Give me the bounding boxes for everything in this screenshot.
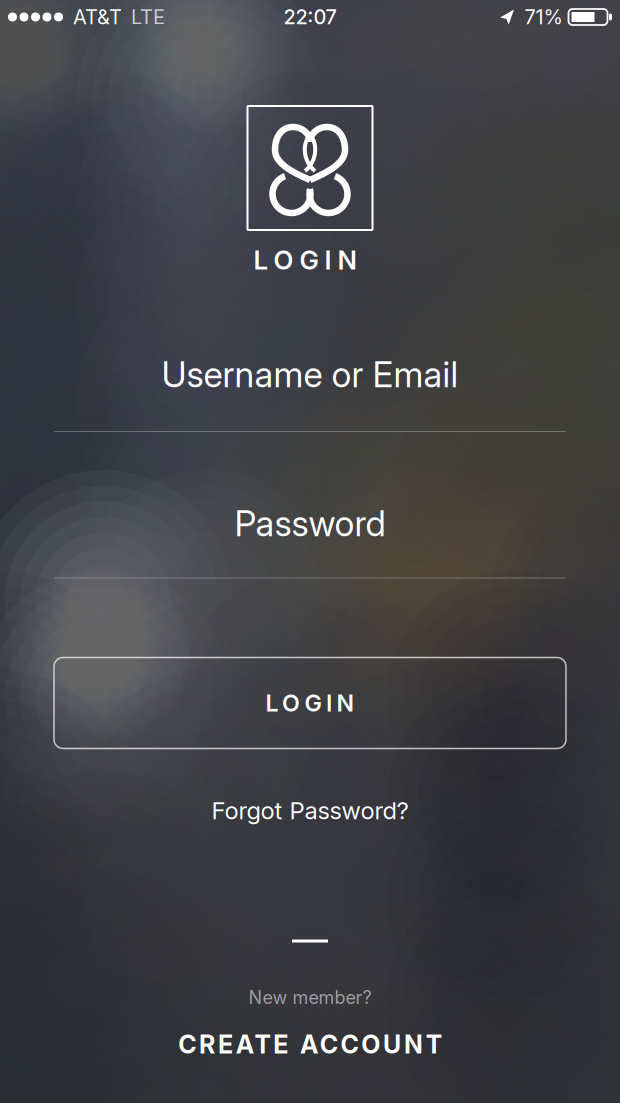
staticText: Username or Email bbox=[161, 353, 458, 396]
staticText: CREATE ACCOUNT bbox=[178, 1029, 442, 1060]
staticText: 71% bbox=[524, 5, 562, 29]
staticText: LOGIN bbox=[265, 689, 354, 717]
staticText: Password bbox=[234, 502, 385, 545]
staticText: New member? bbox=[248, 987, 371, 1008]
button[interactable]: Forgot Password? bbox=[211, 790, 408, 830]
staticText: 22:07 bbox=[283, 5, 336, 29]
staticText: AT&T bbox=[73, 5, 122, 29]
button[interactable]: Password bbox=[54, 498, 566, 578]
staticText: LOGIN bbox=[253, 244, 356, 276]
button[interactable]: CREATE ACCOUNT bbox=[140, 1026, 480, 1062]
staticText: Forgot Password? bbox=[211, 796, 408, 825]
button[interactable]: LOGIN bbox=[54, 657, 566, 748]
staticText: LTE bbox=[131, 5, 165, 29]
button[interactable]: Username or Email bbox=[54, 349, 566, 432]
